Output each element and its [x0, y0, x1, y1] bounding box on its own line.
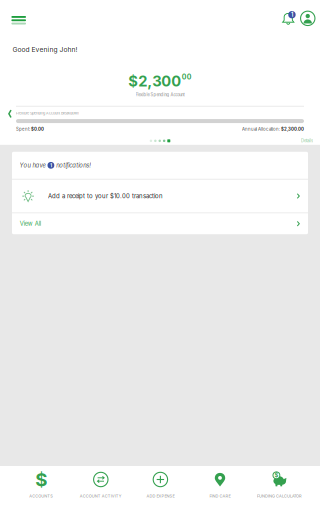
button[interactable]: $: [250, 466, 309, 512]
staticText: Good Evening John!: [12, 46, 77, 54]
staticText: ACCOUNT ACTIVITY: [80, 493, 122, 498]
staticText: ADD EXPENSE: [146, 493, 174, 498]
staticText: View All: [20, 220, 41, 227]
staticText: You have: [19, 162, 47, 169]
staticText: 00: [182, 73, 192, 81]
staticText: Flexible Spending Account: [135, 92, 184, 97]
button[interactable]: Add a receipt to your $10.00 transaction: [12, 179, 308, 212]
button[interactable]: Notifications: [275, 0, 298, 30]
staticText: Annual Allocation:: [242, 127, 281, 132]
staticText: $2,300.00: [281, 127, 304, 132]
button[interactable]: ADD EXPENSE: [131, 466, 190, 512]
staticText: notifications!: [54, 162, 91, 169]
staticText: FUNDING CALCULATOR: [257, 493, 302, 498]
staticText: 1: [291, 11, 293, 18]
button[interactable]: FIND CARE: [190, 466, 250, 512]
staticText: FIND CARE: [209, 493, 230, 498]
staticText: $: [35, 468, 47, 491]
button[interactable]: View All: [12, 213, 308, 234]
button[interactable]: Details: [301, 136, 320, 145]
button[interactable]: $: [11, 466, 71, 512]
staticText: $2,300: [128, 72, 181, 90]
button[interactable]: Menu: [0, 0, 36, 29]
button[interactable]: Profile: [298, 0, 320, 31]
staticText: Add a receipt to your $10.00 transaction: [48, 192, 163, 200]
staticText: $0.00: [31, 127, 44, 132]
staticText: ACCOUNTS: [29, 493, 53, 498]
staticText: Details: [301, 138, 313, 143]
staticText: $: [274, 472, 278, 478]
button[interactable]: ACCOUNT ACTIVITY: [71, 466, 131, 512]
staticText: 1: [50, 162, 52, 168]
staticText: Spent:: [16, 127, 31, 132]
staticText: Flexible Spending Account Breakdown: [16, 111, 79, 115]
